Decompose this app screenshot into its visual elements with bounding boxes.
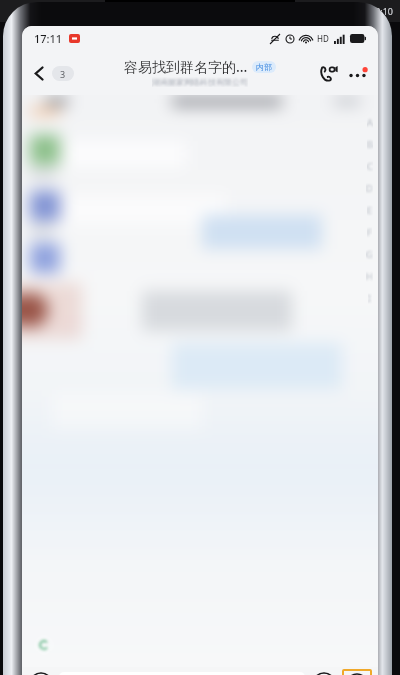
staticText: F (367, 226, 372, 238)
staticText: 容易找到群名字的… (124, 57, 248, 76)
button[interactable]: Emoji (311, 671, 337, 675)
staticText: C (367, 160, 373, 172)
button[interactable]: Video call (314, 59, 343, 88)
staticText: 3 (60, 68, 66, 80)
button[interactable]: More functions (342, 669, 372, 675)
staticText: H (366, 270, 373, 282)
button[interactable]: Back (26, 62, 80, 85)
staticText: G (366, 248, 373, 260)
staticText: 湖南丽家网络科技有限公司 (152, 77, 248, 87)
staticText: A (367, 116, 373, 128)
staticText: HD (317, 33, 329, 44)
button[interactable]: More options (343, 63, 372, 85)
staticText: E (367, 204, 373, 216)
button[interactable]: Voice message (28, 671, 54, 675)
staticText: 10:10 (370, 5, 394, 17)
staticText: I (368, 292, 372, 304)
staticText: 17:11 (34, 31, 63, 46)
staticText: B (367, 138, 373, 150)
staticText: D (366, 182, 373, 194)
staticText: 内部 (256, 62, 272, 72)
